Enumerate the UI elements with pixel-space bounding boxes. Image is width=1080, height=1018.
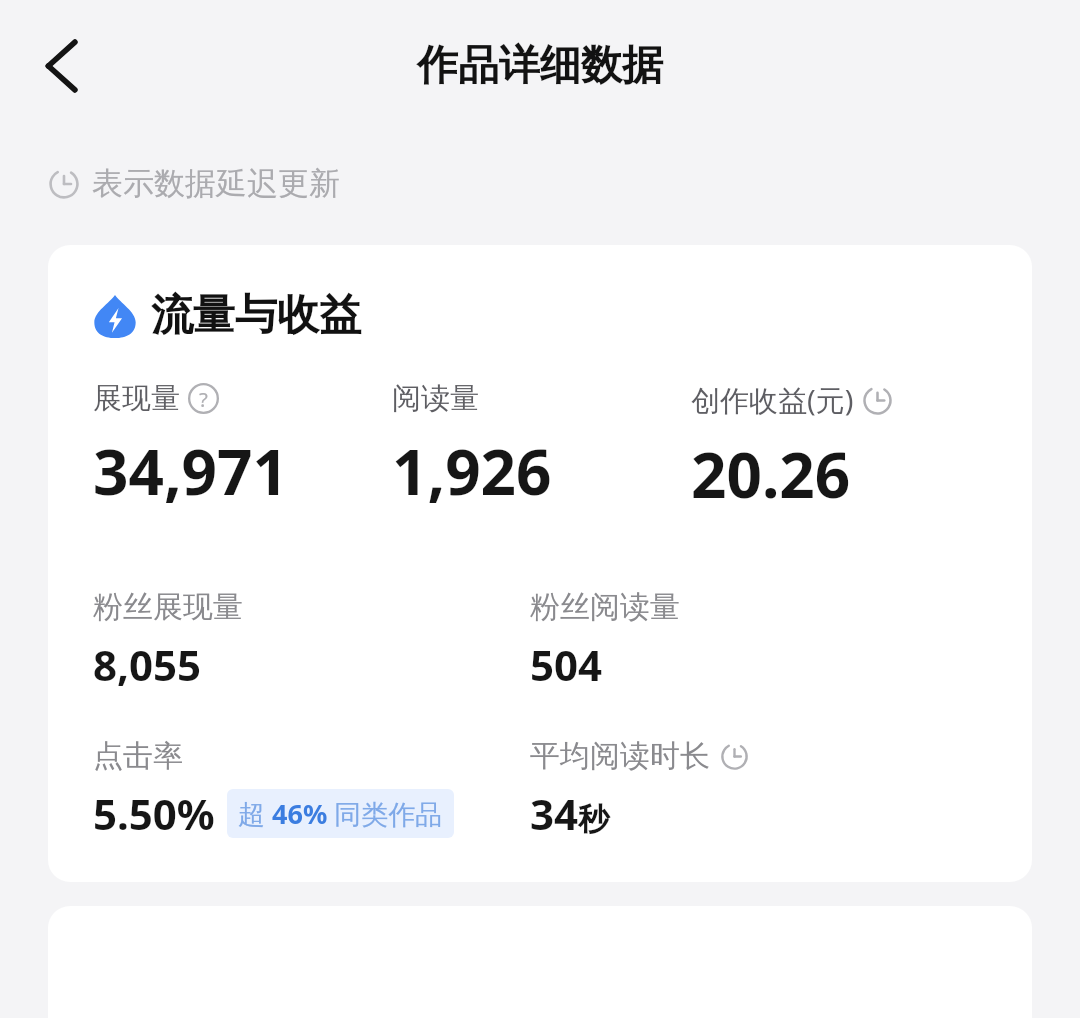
staticText: 34,971 <box>93 429 288 513</box>
staticText: 超 46% 同类作品 <box>238 795 443 832</box>
staticText: ? <box>199 385 208 413</box>
staticText: 1,926 <box>392 429 552 513</box>
staticText: 表示数据延迟更新 <box>92 164 340 203</box>
staticText: 20.26 <box>691 432 851 516</box>
staticText: 34秒 <box>530 785 610 842</box>
staticText: 8,055 <box>93 636 202 693</box>
staticText: 创作收益(元) <box>691 380 854 420</box>
staticText: 作品详细数据 <box>417 40 663 92</box>
staticText: 粉丝展现量 <box>93 588 243 626</box>
button[interactable]: 流量与收益 <box>48 245 1032 882</box>
staticText: 5.50% <box>93 785 215 842</box>
staticText: 阅读量 <box>392 380 479 417</box>
staticText: 展现量 <box>93 380 180 417</box>
staticText: 点击率 <box>93 737 183 775</box>
button[interactable]: Back <box>26 30 98 102</box>
staticText: 粉丝阅读量 <box>530 588 680 626</box>
staticText: 504 <box>530 636 603 693</box>
staticText: 平均阅读时长 <box>530 737 710 775</box>
button[interactable]: 超 46% 同类作品 <box>227 789 454 838</box>
staticText: 流量与收益 <box>151 289 361 342</box>
